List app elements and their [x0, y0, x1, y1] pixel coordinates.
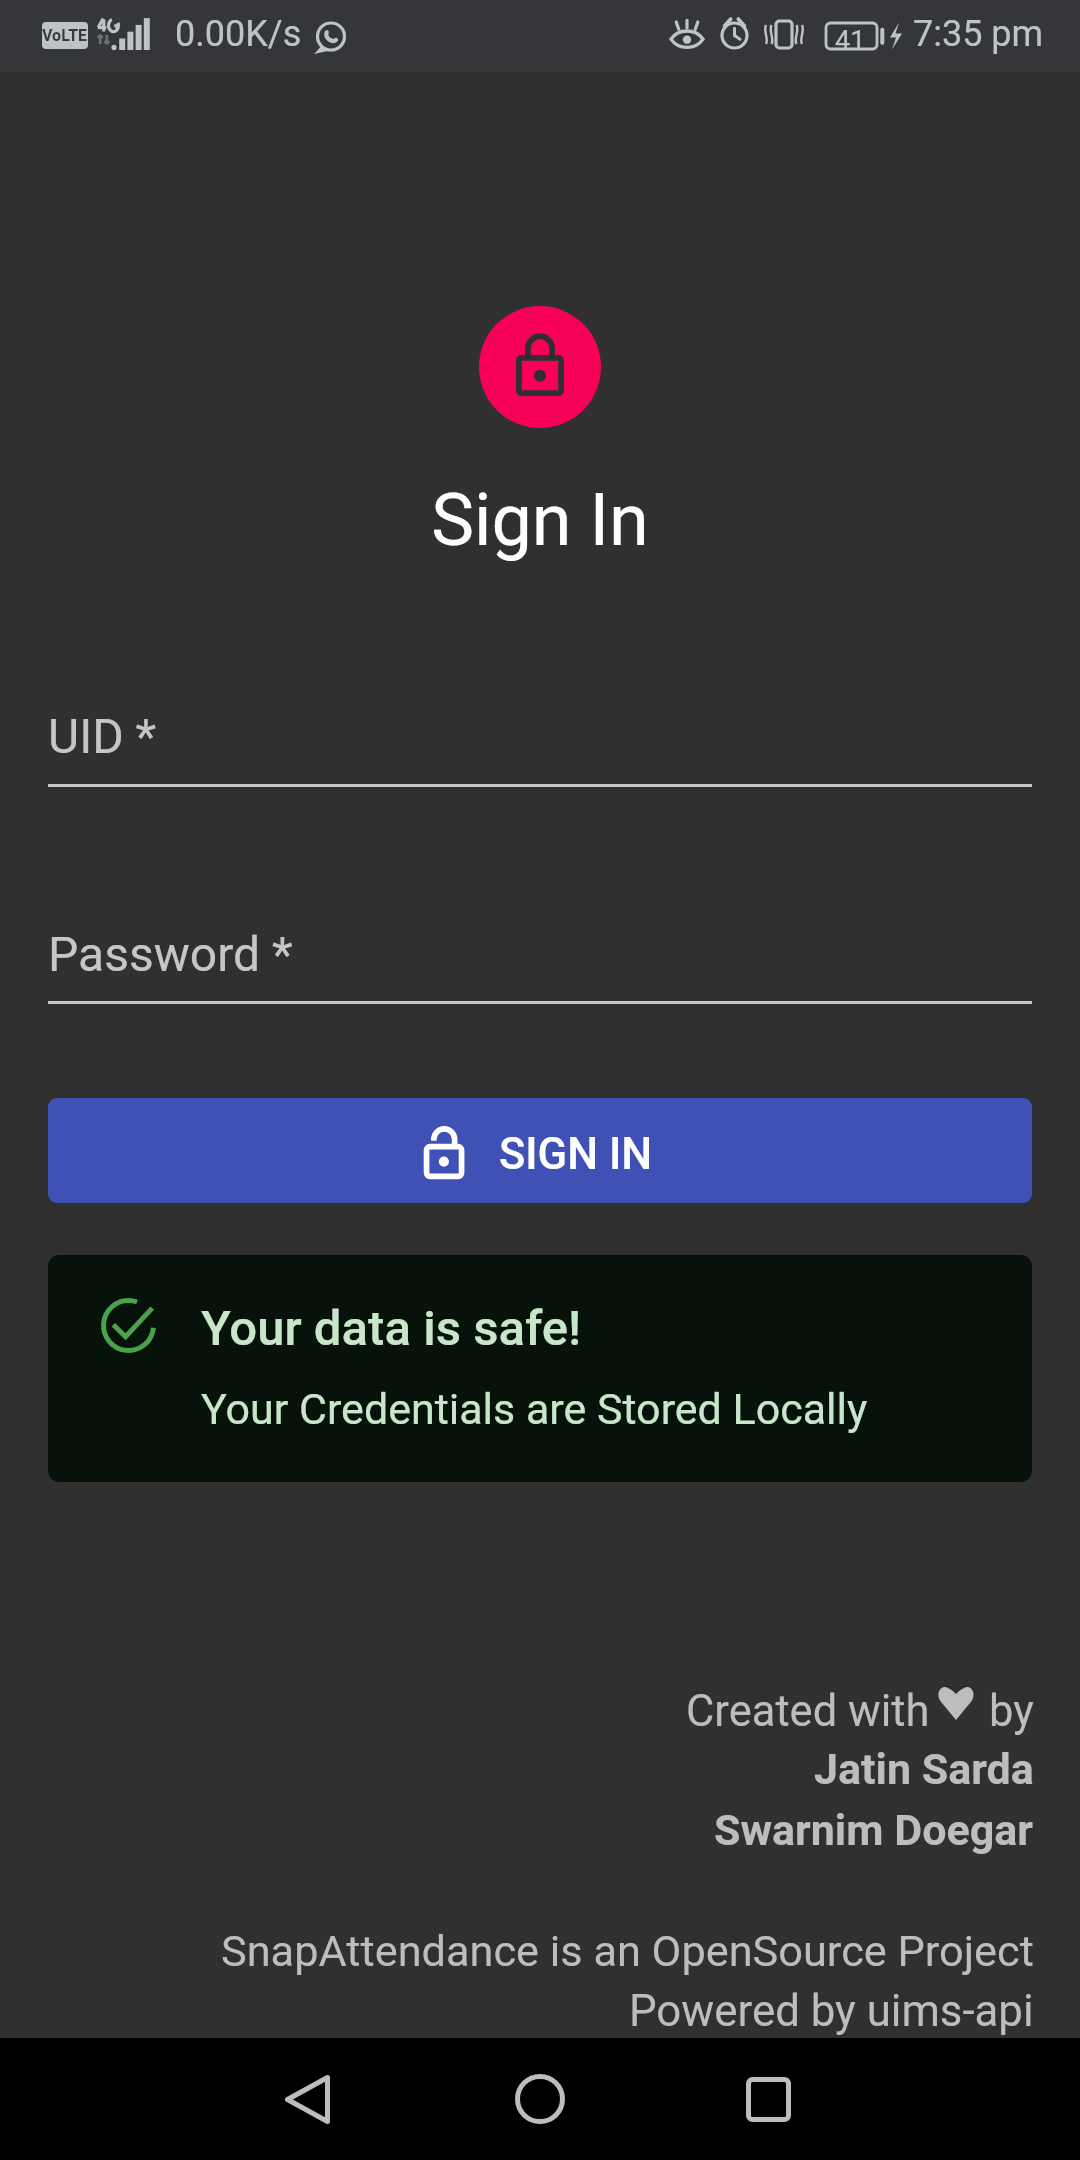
button[interactable]: Recents [678, 2038, 858, 2160]
staticText: Powered by uims-api [629, 1985, 1034, 2036]
button[interactable]: Home [450, 2038, 630, 2160]
staticText: 7:35 pm [913, 13, 1044, 55]
button[interactable]: SIGN IN [48, 1098, 1032, 1203]
button[interactable]: App logo, locked [479, 306, 601, 428]
button[interactable]: Back [217, 2038, 397, 2160]
staticText: by [989, 1686, 1034, 1737]
staticText: Created with [686, 1686, 930, 1737]
staticText: Your data is safe! [201, 1300, 582, 1357]
staticText: 41 [835, 25, 866, 53]
button[interactable]: Password * [48, 918, 1032, 1004]
staticText: VoLTE [42, 26, 88, 45]
staticText: 0.00K/s [175, 13, 302, 55]
staticText: Password * [48, 926, 293, 982]
staticText: SnapAttendance is an OpenSource Project [221, 1926, 1034, 1977]
staticText: Jatin Sarda [814, 1744, 1034, 1794]
button[interactable]: UID * [48, 700, 1032, 787]
staticText: Your Credentials are Stored Locally [201, 1384, 868, 1434]
staticText: UID * [48, 708, 157, 764]
staticText: Sign In [0, 478, 1080, 562]
staticText: SIGN IN [499, 1129, 653, 1180]
staticText: Swarnim Doegar [714, 1805, 1034, 1855]
